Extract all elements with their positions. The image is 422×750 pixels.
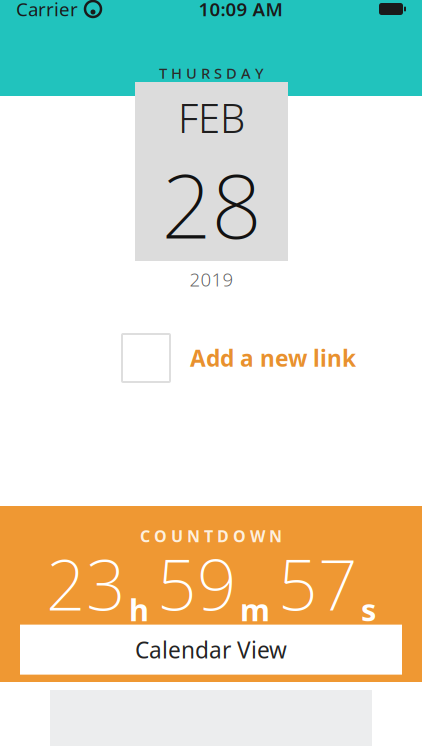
staticText: C O U N T D O W N: [140, 525, 282, 547]
staticText: Add a new link: [190, 343, 356, 373]
staticText: m: [240, 589, 270, 630]
staticText: FEB: [178, 91, 245, 144]
staticText: 23: [46, 538, 126, 630]
staticText: 10:09 AM: [198, 0, 282, 21]
staticText: 28: [161, 146, 261, 263]
staticText: s: [361, 589, 376, 630]
staticText: h: [129, 589, 149, 630]
button[interactable]: Add a new link: [122, 334, 422, 382]
staticText: T H U R S D A Y: [159, 63, 264, 83]
staticText: 59: [157, 538, 237, 630]
button[interactable]: Calendar View: [20, 625, 402, 675]
staticText: Calendar View: [135, 635, 287, 665]
staticText: 57: [278, 538, 358, 630]
staticText: 2019: [189, 267, 233, 292]
staticText: Carrier: [16, 0, 78, 21]
